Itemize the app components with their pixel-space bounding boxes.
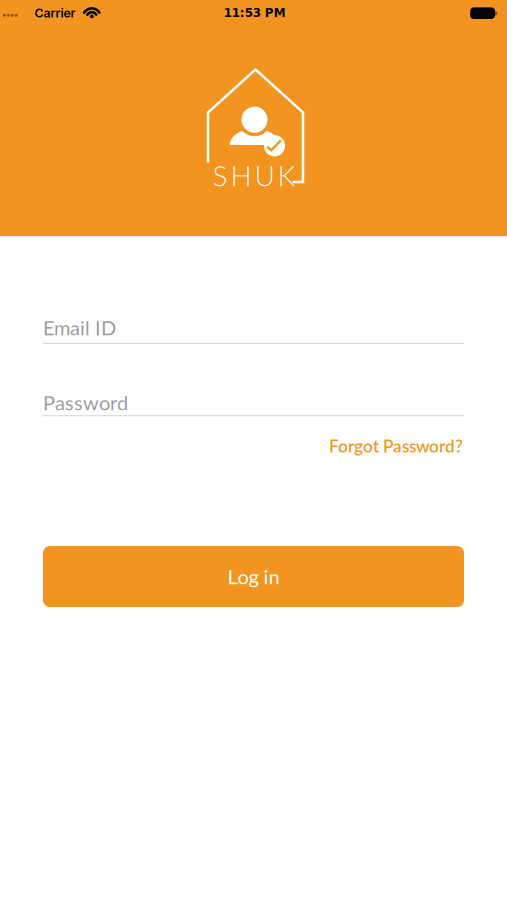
button[interactable]: Password	[43, 385, 464, 425]
staticText: Forgot Password?	[329, 436, 463, 456]
button[interactable]: Email ID	[43, 310, 464, 350]
staticText: SHUK	[212, 159, 295, 192]
staticText: Password	[43, 390, 128, 414]
staticText: Carrier	[34, 5, 75, 20]
staticText: Log in	[227, 564, 279, 588]
staticText: Email ID	[43, 315, 116, 339]
button[interactable]: Forgot Password?	[283, 436, 463, 456]
staticText: 11:53 PM	[224, 6, 286, 20]
button[interactable]: Log in	[43, 546, 464, 607]
